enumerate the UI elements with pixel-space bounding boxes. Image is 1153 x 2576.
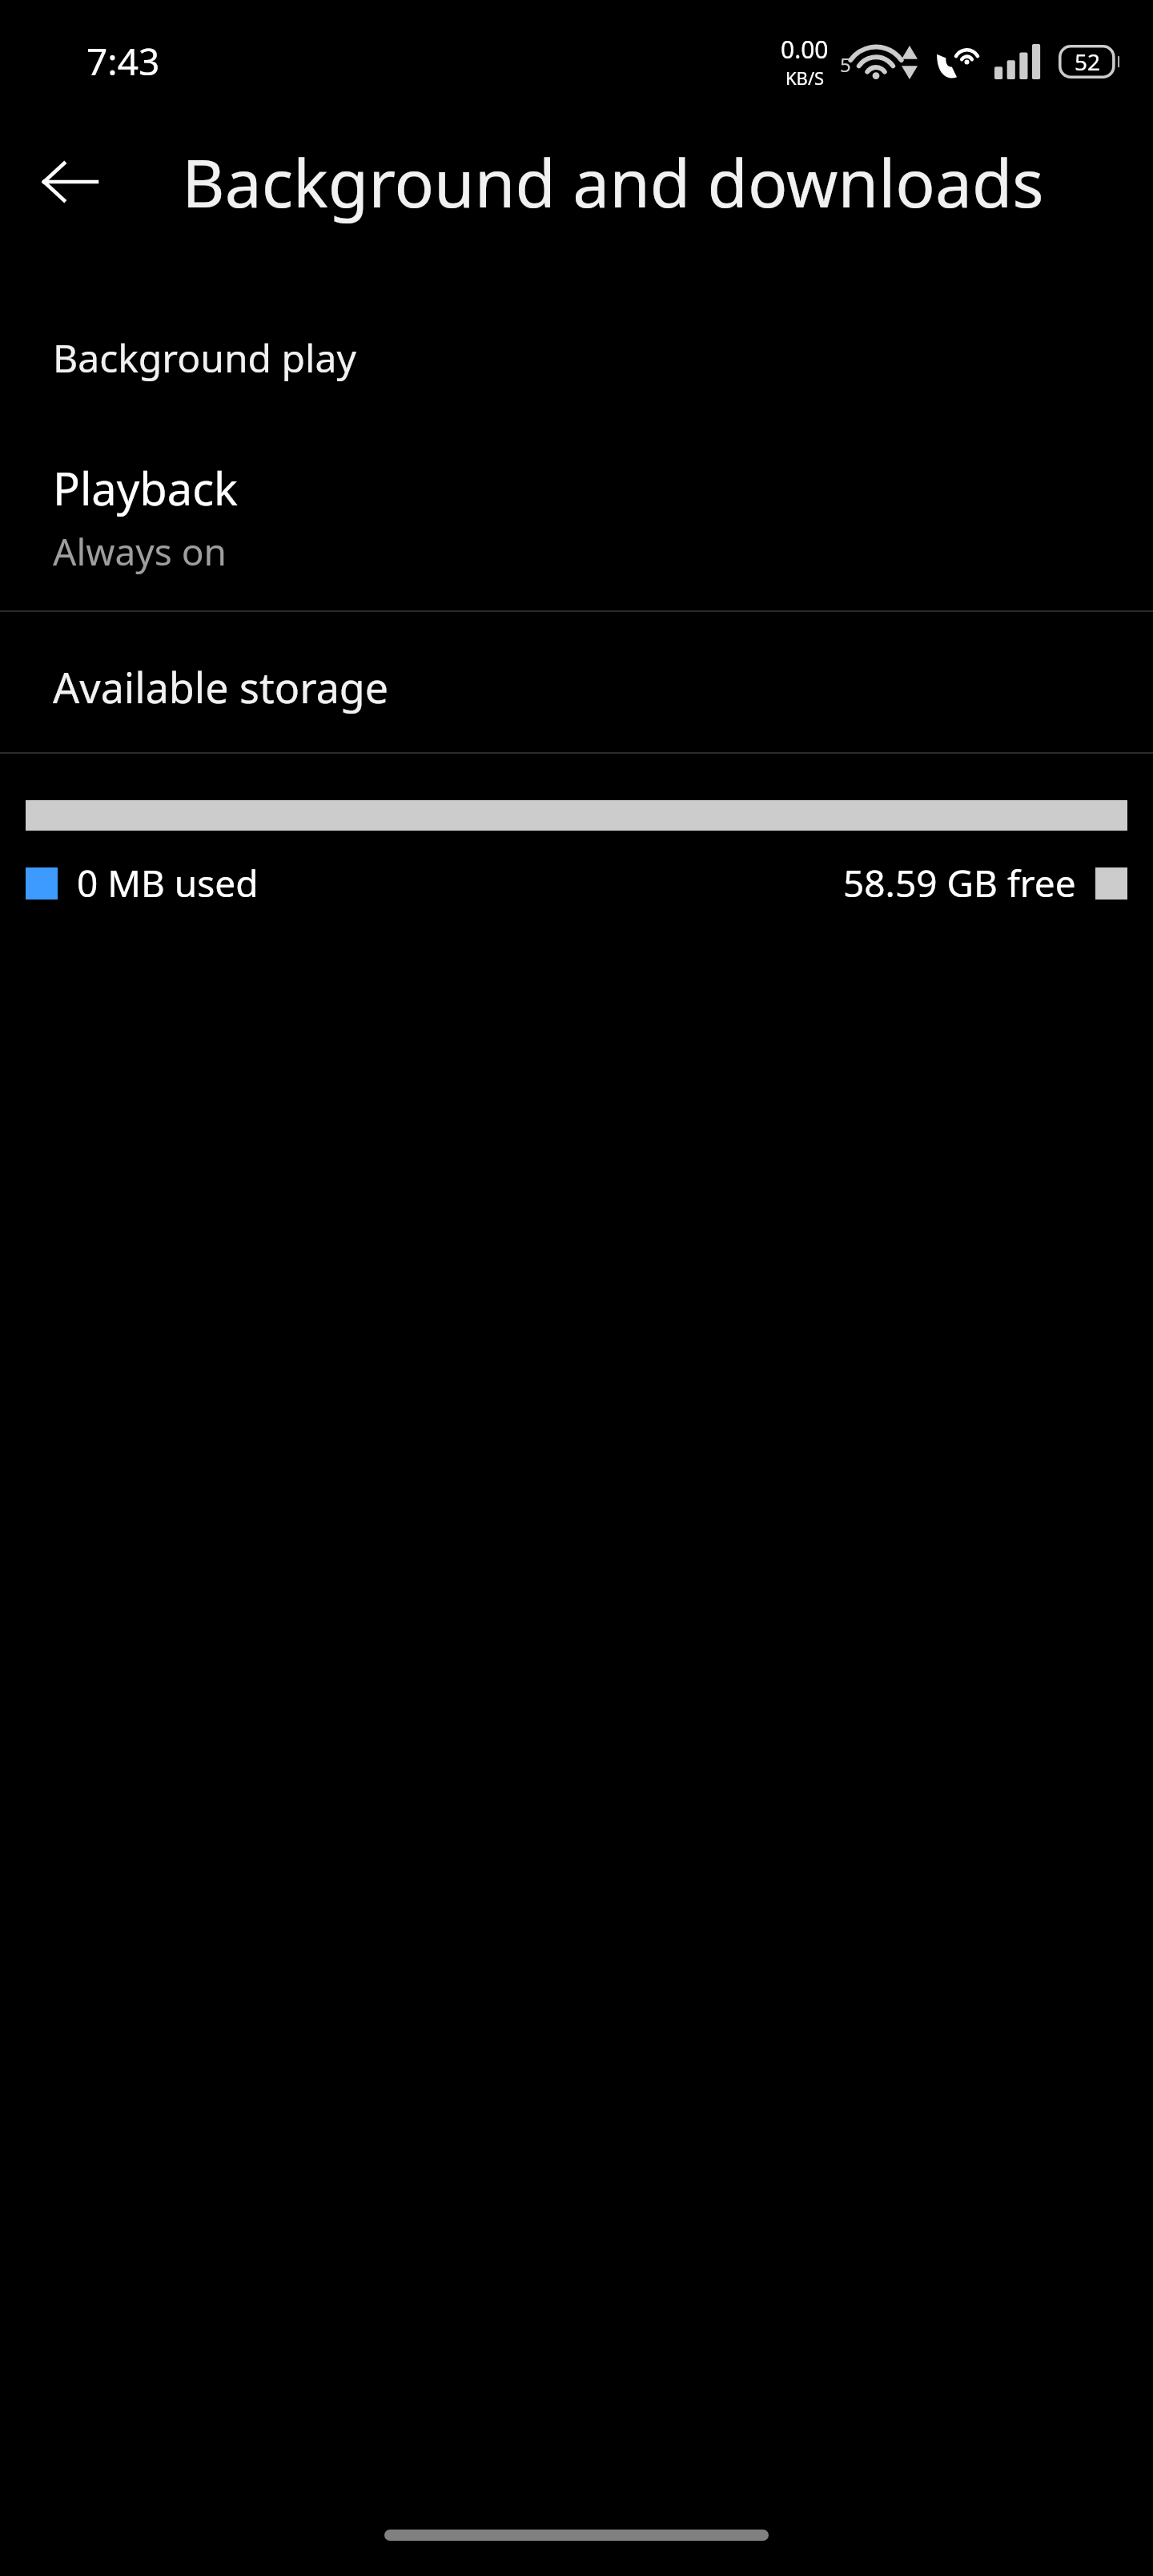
button[interactable]: Back [37, 149, 102, 215]
staticText: 52 [1075, 46, 1101, 77]
staticText: Always on [53, 526, 227, 577]
staticText: KB/S [785, 66, 825, 90]
staticText: Background play [53, 332, 356, 384]
staticText: Playback [53, 457, 238, 518]
staticText: 5 [840, 51, 851, 78]
staticText: 7:43 [86, 36, 160, 87]
staticText: Available storage [53, 658, 389, 715]
staticText: 0.00 [781, 33, 829, 66]
staticText: Background and downloads [182, 137, 1044, 227]
staticText: 0 MB used [77, 858, 259, 908]
staticText: 58.59 GB free [843, 858, 1076, 908]
button[interactable]: Playback [0, 384, 1153, 577]
